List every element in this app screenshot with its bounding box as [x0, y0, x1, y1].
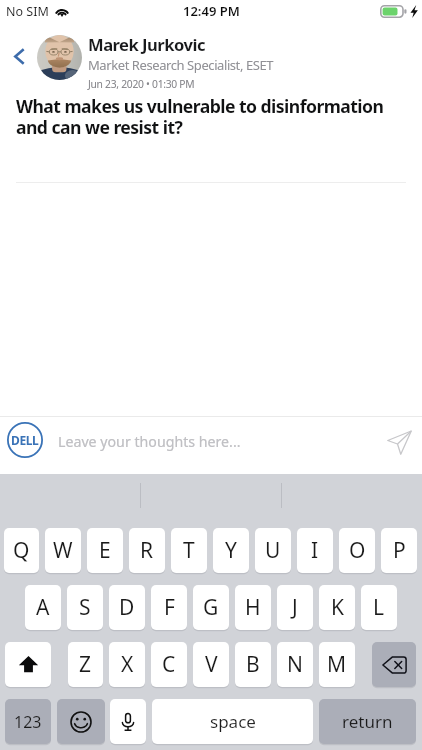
button[interactable]: I — [297, 528, 333, 573]
button[interactable]: C — [151, 642, 187, 687]
staticText: Y — [225, 536, 237, 565]
staticText: return — [342, 710, 393, 733]
button[interactable]: Q — [4, 528, 39, 573]
staticText: C — [162, 650, 176, 679]
button[interactable]: F — [151, 585, 187, 630]
button[interactable]: O — [339, 528, 375, 573]
button[interactable]: Backspace — [372, 642, 416, 687]
button[interactable]: T — [171, 528, 207, 573]
button[interactable]: G — [193, 585, 229, 630]
staticText: Jun 23, 2020 • 01:30 PM — [88, 77, 195, 91]
staticText: D — [119, 593, 135, 622]
staticText: E — [99, 536, 111, 565]
button[interactable]: H — [235, 585, 271, 630]
button[interactable]: B — [235, 642, 271, 687]
button[interactable]: D — [109, 585, 145, 630]
button[interactable]: R — [129, 528, 165, 573]
staticText: 123 — [14, 711, 42, 733]
staticText: Leave your thoughts here... — [58, 432, 241, 451]
button[interactable]: Send — [382, 425, 416, 459]
staticText: Market Research Specialist, ESET — [88, 56, 274, 74]
button[interactable]: Dell — [7, 422, 43, 458]
staticText: P — [393, 536, 406, 565]
staticText: 12:49 PM — [183, 2, 240, 20]
staticText: M — [327, 650, 347, 679]
staticText: T — [183, 536, 195, 565]
staticText: S — [79, 593, 91, 622]
staticText: What makes us vulnerable to disinformati… — [16, 94, 404, 139]
staticText: A — [36, 593, 50, 622]
staticText: Marek Jurkovic — [88, 33, 205, 56]
button[interactable]: return — [319, 699, 416, 744]
button[interactable]: A — [25, 585, 61, 630]
button[interactable]: Emoji — [57, 699, 105, 744]
staticText: N — [287, 650, 303, 679]
staticText: Q — [13, 536, 30, 565]
staticText: B — [246, 650, 260, 679]
staticText: U — [265, 536, 281, 565]
staticText: DELL — [11, 432, 39, 448]
staticText: W — [53, 536, 73, 565]
button[interactable]: Dictate — [110, 699, 146, 744]
button[interactable]: X — [109, 642, 145, 687]
staticText: H — [245, 593, 261, 622]
button[interactable]: J — [277, 585, 313, 630]
button[interactable]: N — [277, 642, 313, 687]
staticText: space — [210, 710, 256, 733]
button[interactable]: M — [319, 642, 355, 687]
staticText: L — [373, 593, 385, 622]
button[interactable]: Back — [2, 34, 36, 78]
button[interactable]: K — [319, 585, 355, 630]
button[interactable]: P — [381, 528, 417, 573]
button[interactable]: E — [87, 528, 123, 573]
button[interactable]: S — [67, 585, 103, 630]
staticText: I — [311, 536, 319, 565]
button[interactable]: U — [255, 528, 291, 573]
staticText: No SIM — [6, 3, 49, 20]
button[interactable]: 123 — [5, 699, 51, 744]
staticText: X — [121, 650, 134, 679]
button[interactable]: Y — [213, 528, 249, 573]
button[interactable]: space — [152, 699, 313, 744]
button[interactable]: L — [361, 585, 397, 630]
button[interactable]: V — [193, 642, 229, 687]
staticText: G — [203, 593, 219, 622]
staticText: R — [140, 536, 154, 565]
staticText: O — [349, 536, 366, 565]
button[interactable]: W — [45, 528, 81, 573]
staticText: J — [292, 593, 298, 622]
staticText: F — [164, 593, 175, 622]
staticText: K — [331, 593, 344, 622]
staticText: Z — [79, 650, 92, 679]
staticText: V — [205, 650, 218, 679]
button[interactable]: Z — [68, 642, 103, 687]
button[interactable]: Shift — [5, 642, 51, 687]
